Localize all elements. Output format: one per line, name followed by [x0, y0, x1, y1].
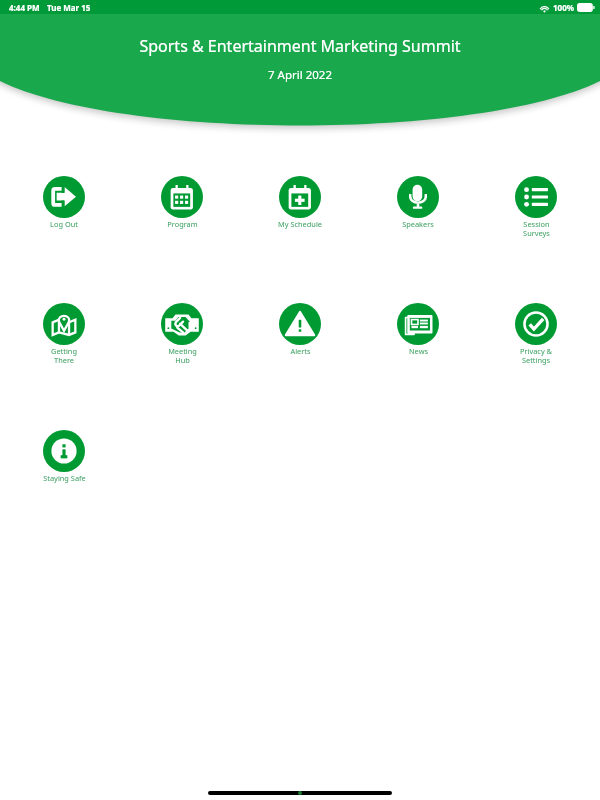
staticText: Program	[167, 219, 198, 229]
staticText: Getting There	[51, 346, 77, 366]
staticText: 100%	[553, 2, 574, 13]
staticText: Session Surveys	[523, 219, 550, 239]
button[interactable]: Alerts	[252, 303, 348, 356]
button[interactable]: Staying Safe	[16, 430, 112, 483]
button[interactable]: Meeting Hub	[134, 303, 230, 366]
staticText: Privacy & Settings	[520, 346, 552, 366]
staticText: Staying Safe	[43, 473, 86, 483]
staticText: Speakers	[402, 219, 434, 229]
staticText: Alerts	[290, 346, 311, 356]
button[interactable]: My Schedule	[252, 176, 348, 229]
button[interactable]: Session Surveys	[488, 176, 584, 239]
button[interactable]: Log Out	[16, 176, 112, 229]
staticText: Sports & Entertainment Marketing Summit	[0, 35, 600, 57]
staticText: Tue Mar 15	[47, 2, 91, 13]
button[interactable]: Speakers	[370, 176, 466, 229]
staticText: 4:44 PM	[9, 2, 40, 13]
other: Wi-Fi signal	[539, 3, 550, 12]
button[interactable]: Getting There	[16, 303, 112, 366]
staticText: 7 April 2022	[0, 67, 600, 83]
other: Battery full	[577, 3, 595, 12]
button[interactable]: News	[370, 303, 466, 356]
staticText: News	[409, 346, 428, 356]
staticText: Log Out	[50, 219, 78, 229]
staticText: My Schedule	[278, 219, 322, 229]
button[interactable]: Privacy & Settings	[488, 303, 584, 366]
staticText: Meeting Hub	[168, 346, 197, 366]
button[interactable]: Program	[134, 176, 230, 229]
